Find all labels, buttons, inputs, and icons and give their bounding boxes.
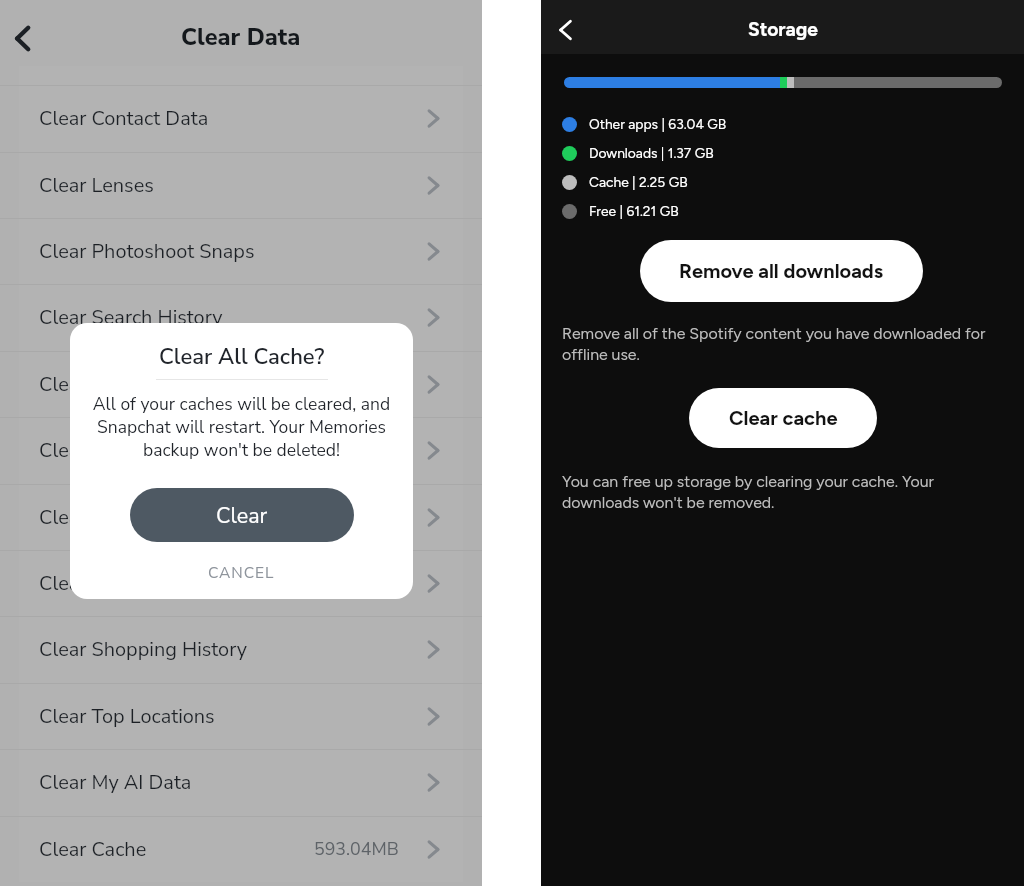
- button[interactable]: CANCEL: [70, 556, 413, 588]
- button[interactable]: Clear Sticker History: [0, 351, 482, 417]
- button[interactable]: Remove all downloads: [640, 240, 923, 302]
- button[interactable]: Clear Top Locations: [0, 683, 482, 749]
- staticText: Clear: [216, 501, 268, 530]
- button[interactable]: Clear Search History: [0, 284, 482, 351]
- staticText: 593.04MB: [314, 837, 399, 861]
- staticText: Clear Sticker History: [39, 371, 223, 398]
- button[interactable]: Clear Shopping History: [0, 616, 482, 683]
- staticText: CANCEL: [208, 562, 275, 583]
- staticText: Clear All Cache?: [159, 342, 325, 372]
- staticText: Other apps | 63.04 GB: [589, 116, 727, 133]
- button[interactable]: Clear cache: [689, 388, 877, 448]
- button[interactable]: Clear Voice Scan Data: [0, 417, 482, 484]
- staticText: Storage: [748, 18, 818, 41]
- staticText: Clear Cache: [39, 836, 147, 863]
- staticText: Clear Voice Scan Data: [39, 437, 236, 464]
- button[interactable]: Clear Photoshoot Snaps: [0, 218, 482, 284]
- staticText: Downloads | 1.37 GB: [589, 145, 714, 162]
- staticText: Clear Photoshoot Snaps: [39, 238, 255, 265]
- staticText: Clear Contact Data: [39, 105, 209, 132]
- staticText: Clear cache: [729, 406, 838, 430]
- staticText: Clear Conversations: [39, 504, 218, 531]
- button[interactable]: Clear My AI Data: [0, 749, 482, 816]
- staticText: Free | 61.21 GB: [589, 203, 679, 220]
- staticText: Clear Gallery Cache: [39, 570, 217, 597]
- button[interactable]: Back: [546, 11, 584, 49]
- staticText: Remove all downloads: [679, 259, 884, 283]
- staticText: Cache | 2.25 GB: [589, 174, 688, 191]
- button[interactable]: Clear Cache: [0, 816, 482, 882]
- button[interactable]: Clear Conversations: [0, 484, 482, 550]
- button[interactable]: Clear Lenses: [0, 152, 482, 218]
- button[interactable]: Clear: [130, 488, 354, 542]
- button[interactable]: Back: [0, 16, 44, 60]
- staticText: Clear My AI Data: [39, 769, 192, 796]
- button[interactable]: Clear Gallery Cache: [0, 550, 482, 616]
- staticText: You can free up storage by clearing your…: [562, 472, 962, 512]
- staticText: Clear Data: [181, 21, 301, 53]
- staticText: Clear Lenses: [39, 172, 154, 199]
- staticText: Clear Search History: [39, 304, 223, 331]
- staticText: Remove all of the Spotify content you ha…: [562, 324, 1002, 364]
- staticText: Clear Top Locations: [39, 703, 215, 730]
- staticText: All of your caches will be cleared, and …: [84, 392, 399, 462]
- button[interactable]: Clear Contact Data: [0, 85, 482, 152]
- staticText: Clear Shopping History: [39, 636, 248, 663]
